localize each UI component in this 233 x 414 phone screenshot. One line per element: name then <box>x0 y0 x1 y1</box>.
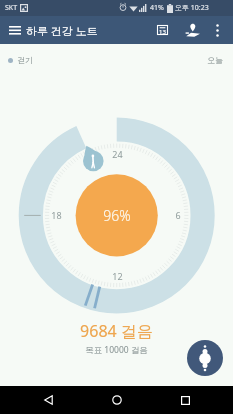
button[interactable]: Calendar <box>149 17 175 43</box>
staticText: 오후 10:23 <box>175 3 209 13</box>
staticText: 18 <box>51 209 62 221</box>
button[interactable]: More actions <box>187 340 223 376</box>
button[interactable]: Home <box>97 386 137 414</box>
staticText: 오늘 <box>207 55 223 65</box>
button[interactable]: Recents <box>165 386 205 414</box>
staticText: 13 <box>159 28 166 36</box>
staticText: 6 <box>175 209 181 221</box>
button[interactable]: 걷기 <box>6 53 35 67</box>
staticText: SKT <box>5 3 18 13</box>
button[interactable]: Menu <box>3 18 27 42</box>
staticText: 41% <box>150 3 164 13</box>
staticText: 24 <box>112 148 123 160</box>
button[interactable]: More options <box>205 18 230 43</box>
staticText: 12 <box>112 270 123 282</box>
button[interactable]: Back <box>28 386 68 414</box>
staticText: 목표 10000 걸음 <box>85 344 148 356</box>
button[interactable]: 오늘 <box>205 53 225 67</box>
staticText: 하루 건강 노트 <box>26 23 98 38</box>
staticText: 96% <box>103 206 131 224</box>
button[interactable]: Map <box>179 17 205 43</box>
staticText: 걷기 <box>17 55 33 65</box>
staticText: 9684 걸음 <box>80 320 153 342</box>
